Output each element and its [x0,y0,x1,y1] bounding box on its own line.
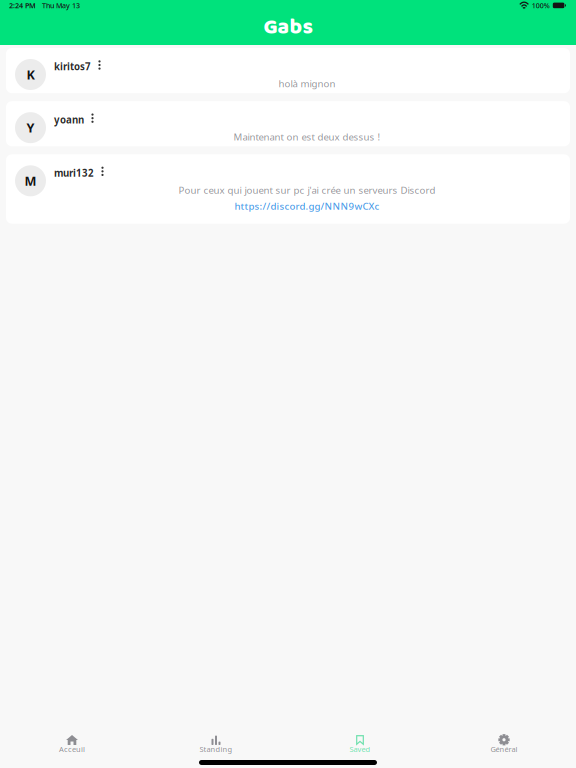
staticText: K [26,66,34,83]
button[interactable]: More options [94,59,105,71]
button[interactable]: More options [97,165,108,177]
staticText: yoann [54,113,84,126]
staticText: Pour ceux qui jouent sur pc j'ai crée un… [178,183,435,196]
button[interactable]: Acceuil [0,732,144,753]
staticText: 2:24 PM [9,0,36,10]
button[interactable]: Général [432,732,576,753]
staticText: holà mignon [278,77,335,90]
staticText: Gabs [263,10,312,45]
staticText: Standing [199,744,232,754]
staticText: Thu May 13 [42,1,80,10]
staticText: muri132 [54,166,94,179]
staticText: 100% [532,1,550,10]
staticText: kiritos7 [54,60,91,73]
staticText: M [24,172,36,189]
staticText: Saved [349,744,370,754]
button[interactable]: More options [87,112,98,124]
staticText: Général [490,744,517,754]
staticText: Acceuil [59,744,85,754]
button[interactable]: Standing [144,732,288,753]
button[interactable]: Saved [288,732,432,753]
staticText: Maintenant on est deux dessus ! [233,130,380,143]
staticText: https://discord.gg/NNN9wCXc [234,199,379,213]
staticText: Y [26,119,34,136]
